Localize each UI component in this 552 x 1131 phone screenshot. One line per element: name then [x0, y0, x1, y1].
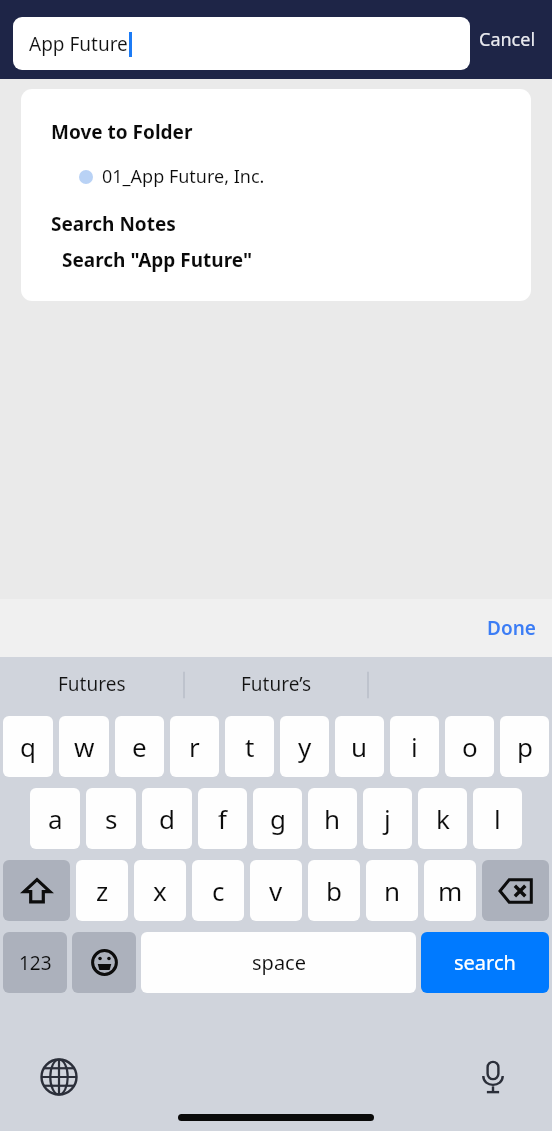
staticText: q — [20, 729, 36, 764]
button[interactable]: Search "App Future" — [21, 247, 531, 273]
button[interactable]: Future’s — [184, 657, 368, 710]
button[interactable]: Futures — [0, 657, 184, 710]
staticText: Search "App Future" — [62, 247, 253, 273]
button[interactable]: b — [308, 860, 360, 921]
button[interactable]: m — [424, 860, 476, 921]
staticText: e — [132, 729, 147, 764]
button[interactable]: k — [418, 788, 467, 849]
button[interactable]: space — [141, 932, 416, 993]
staticText: Search Notes — [51, 211, 176, 237]
button[interactable]: z — [76, 860, 128, 921]
button[interactable]: x — [134, 860, 186, 921]
staticText: Futures — [58, 671, 126, 697]
button[interactable]: Change keyboard — [28, 1046, 90, 1108]
button[interactable]: l — [473, 788, 522, 849]
staticText: space — [252, 949, 306, 976]
button[interactable]: Dictation — [462, 1046, 524, 1108]
staticText: r — [189, 729, 200, 764]
staticText: w — [74, 729, 95, 764]
staticText: y — [298, 729, 312, 764]
staticText: o — [462, 729, 478, 764]
button[interactable]: s — [86, 788, 136, 849]
button[interactable]: h — [308, 788, 357, 849]
staticText: c — [212, 873, 225, 908]
button[interactable]: p — [500, 716, 549, 777]
staticText: z — [96, 873, 109, 908]
button[interactable]: t — [225, 716, 274, 777]
staticText: 01_App Future, Inc. — [102, 164, 265, 189]
button[interactable]: 123 — [3, 932, 67, 993]
button[interactable]: c — [192, 860, 244, 921]
staticText: App Future — [29, 31, 128, 57]
staticText: j — [384, 801, 391, 836]
button[interactable]: Done — [479, 607, 544, 649]
button[interactable]: e — [115, 716, 164, 777]
button[interactable]: u — [335, 716, 384, 777]
button[interactable]: Backspace — [482, 860, 549, 921]
button[interactable]: search — [421, 932, 549, 993]
button[interactable]: d — [142, 788, 192, 849]
button[interactable]: q — [3, 716, 53, 777]
staticText: p — [517, 729, 533, 764]
staticText: t — [245, 729, 255, 764]
staticText: a — [48, 801, 63, 836]
staticText: g — [270, 801, 286, 836]
button[interactable]: Move to Folder — [21, 119, 531, 145]
staticText: 123 — [19, 950, 52, 976]
button[interactable]: y — [280, 716, 329, 777]
button[interactable]: r — [170, 716, 219, 777]
button[interactable]: f — [198, 788, 247, 849]
staticText: b — [326, 873, 342, 908]
staticText: l — [494, 801, 501, 836]
button[interactable]: a — [30, 788, 80, 849]
staticText: s — [105, 801, 118, 836]
button[interactable]: g — [253, 788, 302, 849]
button[interactable]: Shift — [3, 860, 70, 921]
staticText: Future’s — [241, 671, 312, 697]
staticText: i — [411, 729, 418, 764]
staticText: n — [384, 873, 401, 908]
staticText: x — [153, 873, 167, 908]
staticText: u — [351, 729, 368, 764]
button[interactable]: v — [250, 860, 302, 921]
button[interactable]: Cancel — [473, 19, 542, 60]
button[interactable]: i — [390, 716, 439, 777]
button[interactable]: j — [363, 788, 412, 849]
staticText: k — [436, 801, 450, 836]
staticText: Cancel — [479, 27, 536, 52]
staticText: Done — [487, 615, 536, 641]
button[interactable]: w — [59, 716, 109, 777]
button[interactable]: 01_App Future, Inc. — [21, 164, 531, 189]
button[interactable]: Emoji — [72, 932, 136, 993]
staticText: v — [269, 873, 283, 908]
staticText: Move to Folder — [51, 119, 193, 145]
button[interactable]: n — [366, 860, 418, 921]
staticText: m — [438, 873, 463, 908]
button[interactable]: Search Notes — [21, 211, 531, 237]
staticText: f — [218, 801, 227, 836]
button[interactable]: App Future — [13, 17, 470, 70]
button[interactable]: o — [445, 716, 494, 777]
staticText: search — [454, 949, 516, 976]
staticText: d — [159, 801, 175, 836]
staticText: h — [324, 801, 341, 836]
